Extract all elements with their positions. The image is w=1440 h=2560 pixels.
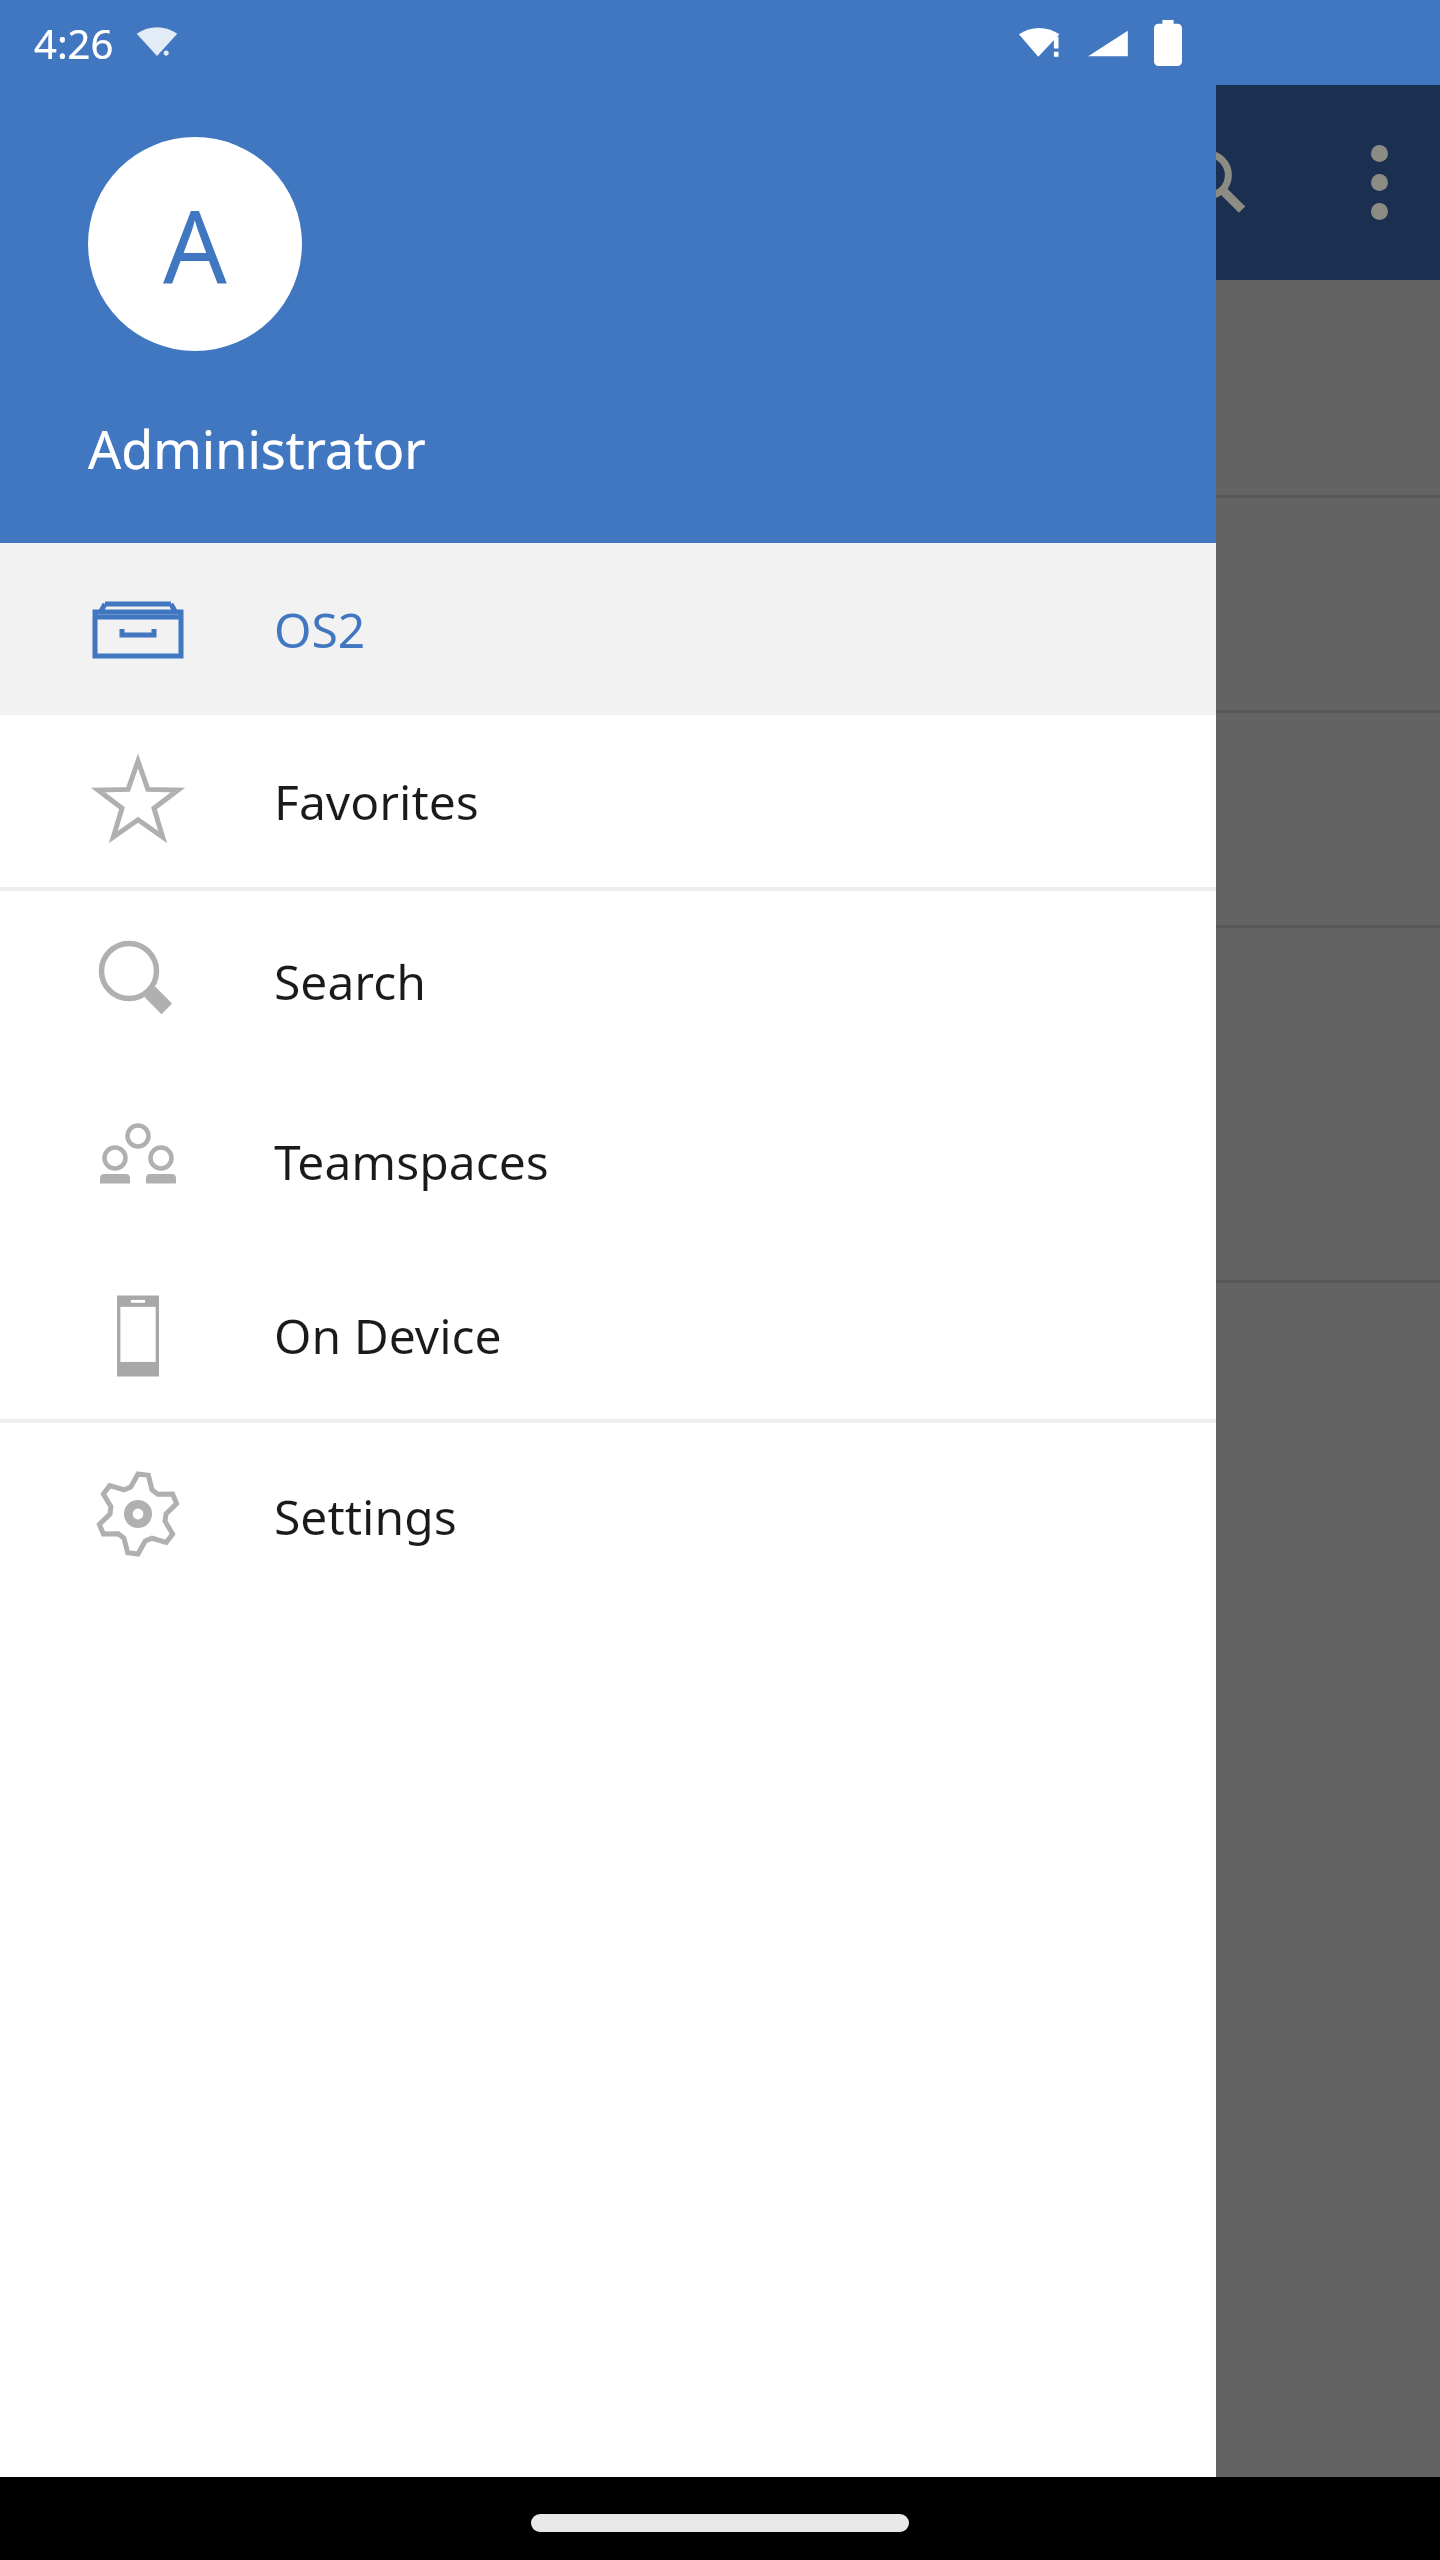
staticText: Favorites xyxy=(274,769,479,834)
button[interactable]: Favorites xyxy=(0,715,1216,887)
button[interactable]: Teamspaces xyxy=(0,1071,1216,1252)
staticText: A xyxy=(163,176,227,312)
staticText: Administrator xyxy=(88,413,426,484)
staticText: OS2 xyxy=(274,597,366,662)
button[interactable]: OS2 xyxy=(0,543,1216,715)
staticText: On Device xyxy=(274,1303,502,1368)
staticText: Search xyxy=(274,949,426,1014)
staticText: Teamspaces xyxy=(274,1129,549,1194)
button[interactable]: More options xyxy=(1371,145,1388,220)
button[interactable]: Search xyxy=(0,891,1216,1071)
button[interactable]: A xyxy=(88,137,302,351)
button[interactable]: Settings xyxy=(0,1423,1216,1609)
button[interactable]: On Device xyxy=(0,1252,1216,1419)
staticText: 4:26 xyxy=(34,16,114,70)
other: Search xyxy=(1178,147,1248,217)
staticText: Settings xyxy=(274,1484,457,1549)
